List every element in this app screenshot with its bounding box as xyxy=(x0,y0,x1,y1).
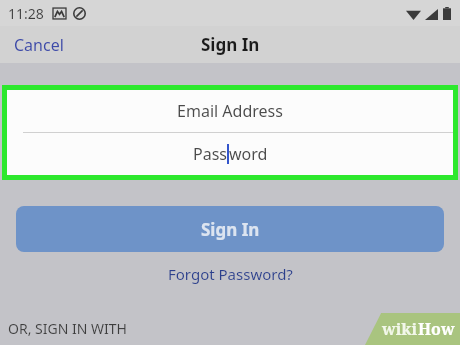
button[interactable]: Pass xyxy=(7,133,453,175)
button[interactable]: Cancel xyxy=(0,30,74,60)
staticText: Email Address xyxy=(177,100,283,122)
staticText: Sign In xyxy=(201,218,260,241)
button[interactable]: Sign In xyxy=(16,206,444,252)
staticText: Sign In xyxy=(201,33,260,56)
staticText: word xyxy=(229,143,268,165)
other: Battery xyxy=(443,7,451,20)
staticText: wiki xyxy=(382,318,418,340)
staticText: How xyxy=(418,318,455,340)
other: Wi-Fi xyxy=(406,8,421,20)
staticText: 11:28 xyxy=(8,4,44,23)
button[interactable]: Email Address xyxy=(7,90,453,132)
staticText: OR, SIGN IN WITH xyxy=(8,319,127,338)
other: Do not disturb xyxy=(73,7,86,20)
staticText: Pass xyxy=(193,143,227,165)
other: Mail xyxy=(53,7,66,20)
button[interactable]: Forgot Password? xyxy=(160,262,301,286)
other: Signal xyxy=(425,8,438,20)
staticText: Forgot Password? xyxy=(168,264,293,284)
staticText: Cancel xyxy=(14,34,64,56)
